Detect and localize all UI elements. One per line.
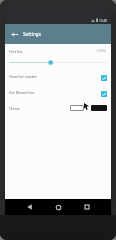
staticText: Use Monos Font (9, 90, 35, 94)
button[interactable] (5, 57, 111, 68)
button[interactable]: Back (21, 199, 37, 215)
button[interactable]: Recent apps (79, 199, 95, 215)
staticText: 100% (96, 48, 107, 53)
button[interactable]: Light theme (70, 105, 84, 111)
button[interactable]: Show line number (5, 68, 111, 84)
staticText: Font Size (9, 49, 23, 53)
staticText: Theme (9, 106, 20, 110)
button[interactable]: Home (50, 199, 66, 215)
button[interactable]: Use Monos Font (5, 84, 111, 100)
staticText: 12:48 (99, 19, 108, 23)
button[interactable]: Dark theme (91, 105, 107, 111)
button[interactable]: Navigate up (8, 28, 21, 41)
button[interactable]: Font Size (5, 44, 111, 57)
staticText: Show line number (9, 74, 38, 78)
staticText: Settings (23, 31, 41, 37)
